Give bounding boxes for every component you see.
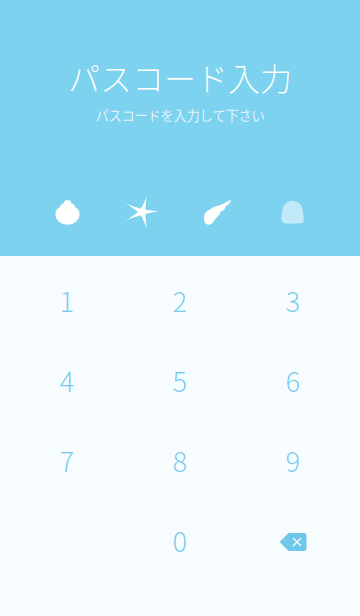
button[interactable]: Delete [236,500,349,580]
staticText: 2 [172,280,187,320]
button[interactable]: 6 [236,340,349,420]
staticText: 7 [59,440,74,480]
staticText: 3 [285,280,300,320]
staticText: 6 [285,360,300,400]
staticText: 4 [59,360,74,400]
button[interactable]: 0 [123,500,236,580]
staticText: 1 [59,280,74,320]
button[interactable]: 1 [10,260,123,340]
button[interactable]: 7 [10,420,123,500]
staticText: 5 [172,360,187,400]
button[interactable]: 8 [123,420,236,500]
staticText: パスコードを入力して下さい [95,105,264,125]
staticText: パスコード入力 [68,54,292,100]
staticText: 0 [172,520,187,560]
button[interactable]: 9 [236,420,349,500]
staticText: 8 [172,440,187,480]
button[interactable]: 3 [236,260,349,340]
staticText: 9 [285,440,300,480]
button[interactable]: 4 [10,340,123,420]
button[interactable]: 2 [123,260,236,340]
button[interactable]: 5 [123,340,236,420]
